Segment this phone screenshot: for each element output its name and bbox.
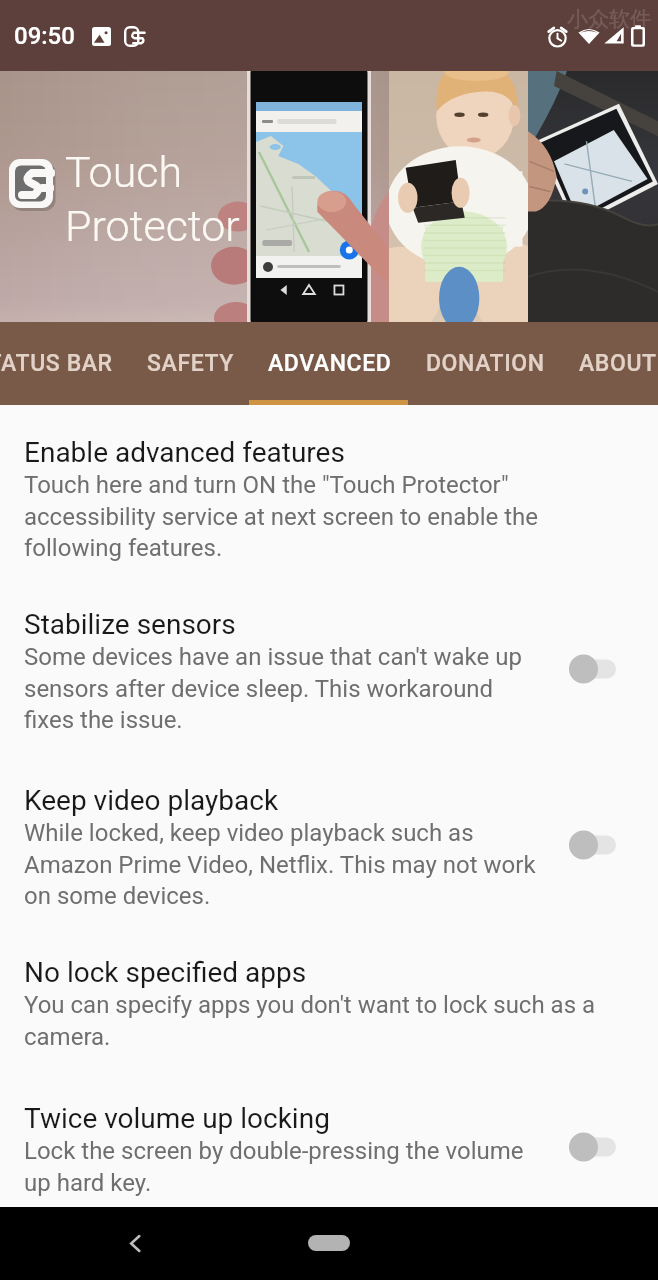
staticText: Touch here and turn ON the "Touch Protec… [24, 471, 538, 561]
staticText: STATUS BAR [0, 350, 113, 377]
button[interactable]: DONATION [409, 322, 562, 405]
staticText: Enable advanced features [24, 436, 345, 469]
button[interactable]: Stabilize sensors [0, 608, 658, 733]
button[interactable]: ADVANCED [251, 322, 409, 405]
button[interactable]: Enable advanced features [0, 436, 658, 561]
staticText: You can specify apps you don't want to l… [24, 991, 596, 1050]
staticText: While locked, keep video playback such a… [24, 819, 536, 909]
staticText: Twice volume up locking [24, 1102, 330, 1135]
staticText: Touch [65, 147, 183, 197]
staticText: ADVANCED [268, 350, 392, 377]
button[interactable]: No lock specified apps [0, 956, 658, 1050]
staticText: SAFETY [147, 350, 234, 377]
button[interactable]: Stabilize sensors [569, 645, 631, 693]
staticText: DONATION [426, 350, 545, 377]
staticText: Some devices have an issue that can't wa… [24, 643, 522, 733]
button[interactable]: Back [111, 1219, 159, 1267]
staticText: ABOUT [579, 350, 597, 377]
button[interactable]: Keep video playback [0, 784, 658, 909]
staticText: No lock specified apps [24, 956, 307, 989]
staticText: 09:50 [14, 22, 75, 50]
button[interactable]: Keep video playback [569, 821, 631, 869]
button[interactable]: STATUS BAR [0, 322, 130, 405]
staticText: Stabilize sensors [24, 608, 236, 641]
button[interactable]: Twice volume up locking [0, 1102, 658, 1196]
button[interactable]: SAFETY [130, 322, 251, 405]
staticText: 小众软件 [567, 6, 651, 32]
staticText: Keep video playback [24, 784, 279, 817]
button[interactable]: ABOUT [562, 322, 614, 405]
staticText: Lock the screen by double-pressing the v… [24, 1137, 524, 1196]
button[interactable]: Home [274, 1219, 384, 1267]
staticText: Protector [65, 201, 240, 251]
button[interactable]: Twice volume up locking [569, 1123, 631, 1171]
